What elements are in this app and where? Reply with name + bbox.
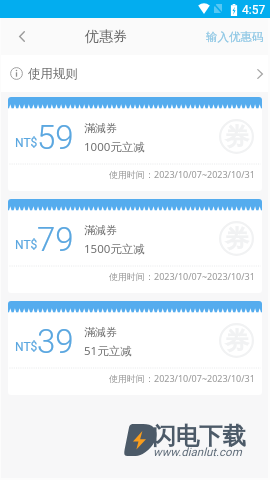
staticText: 使用时间：2023/10/07~2023/10/31 (109, 372, 255, 384)
staticText: 使用时间：2023/10/07~2023/10/31 (109, 270, 255, 282)
staticText: 券 (225, 326, 249, 356)
staticText: 4:57 (242, 3, 266, 17)
button[interactable]: Back (0, 18, 34, 55)
staticText: 滿減券 (84, 325, 117, 339)
staticText: 1000元立减 (84, 139, 145, 155)
button[interactable]: 输入优惠码 (200, 21, 270, 53)
button[interactable]: 券 (8, 97, 262, 191)
staticText: 滿減券 (84, 121, 117, 135)
staticText: NT$ (15, 238, 38, 252)
staticText: 79 (37, 220, 74, 259)
staticText: 59 (37, 118, 74, 157)
staticText: 滿減券 (84, 223, 117, 237)
staticText: 输入优惠码 (206, 30, 264, 44)
staticText: NT$ (15, 136, 38, 150)
staticText: 闪电下载 (152, 421, 246, 451)
staticText: NT$ (15, 340, 38, 354)
staticText: 券 (225, 224, 249, 254)
staticText: 使用规则 (28, 66, 78, 82)
staticText: 51元立减 (84, 343, 132, 359)
staticText: www.dianlut.com (153, 445, 242, 458)
button[interactable]: 券 (8, 301, 262, 395)
staticText: 使用时间：2023/10/07~2023/10/31 (109, 168, 255, 180)
staticText: 券 (225, 122, 249, 152)
button[interactable]: 券 (8, 199, 262, 293)
staticText: 1500元立减 (84, 241, 145, 257)
staticText: 39 (37, 322, 74, 361)
staticText: 优惠券 (85, 28, 127, 46)
button[interactable]: 使用规则 (0, 55, 270, 92)
